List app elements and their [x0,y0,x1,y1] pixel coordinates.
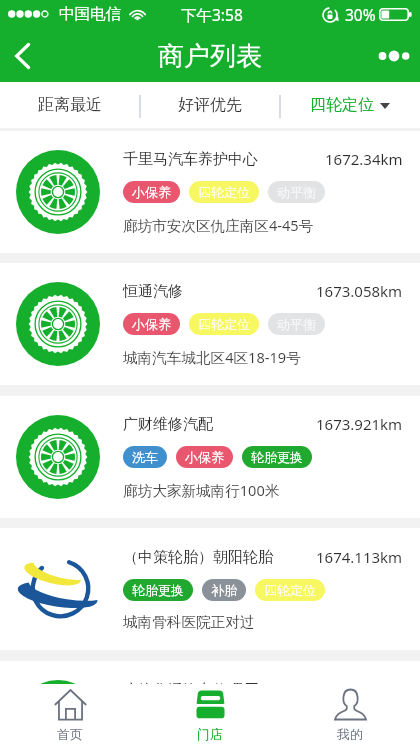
button[interactable]: 门店 [140,684,280,746]
staticText: 广财维修汽配 [123,415,213,434]
staticText: 1672.34km [325,149,403,169]
button[interactable]: Back [0,30,46,82]
staticText: 轮胎更换 [132,582,184,598]
button[interactable]: 千里马汽车养护中心 [0,131,420,253]
staticText: 恒通汽修 [123,282,183,301]
staticText: 洗车 [132,449,158,465]
staticText: 小保养 [132,316,171,332]
staticText: 城南骨科医院正对过 [123,613,255,631]
button[interactable]: （中策轮胎）朝阳轮胎 [0,528,420,650]
staticText: 首页 [57,726,83,742]
staticText: 廊坊大家新城南行100米 [123,480,280,500]
staticText: 四轮定位 [198,316,250,332]
staticText: 小保养 [185,449,224,465]
staticText: 好评优先 [178,95,242,115]
staticText: 四轮定位 [264,582,316,598]
button[interactable]: 好评优先 [140,82,280,128]
staticText: （中策轮胎）朝阳轮胎 [123,548,273,567]
staticText: 商户列表 [158,40,262,73]
staticText: 四轮定位 [198,184,250,200]
staticText: 1674.113km [316,547,403,567]
staticText: 中国电信 [59,4,121,24]
staticText: 四轮定位 [198,715,250,731]
staticText: 廊坊市安次区仇庄南区4-45号 [123,215,314,235]
button[interactable]: 距离最近 [0,82,140,128]
staticText: 动平衡 [277,316,316,332]
staticText: 动平衡 [277,184,316,200]
staticText: 30% [345,4,376,25]
button[interactable]: More options [372,30,420,82]
staticText: 补胎 [211,582,237,598]
staticText: 廊坊华通汽车修理厂 [123,681,258,700]
staticText: 我的 [337,726,363,742]
button[interactable]: 广财维修汽配 [0,396,420,518]
staticText: 城南汽车城北区4区18-19号 [123,347,301,367]
staticText: 轮胎更换 [251,449,303,465]
staticText: 门店 [197,726,223,742]
staticText: 1673.921km [316,414,403,434]
staticText: 距离最近 [38,95,102,115]
button[interactable]: 首页 [0,684,140,746]
staticText: 千里马汽车养护中心 [123,150,258,169]
staticText: 下午3:58 [181,4,243,25]
button[interactable]: 四轮定位 [280,82,420,128]
staticText: 小保养 [132,184,171,200]
button[interactable]: 恒通汽修 [0,263,420,385]
staticText: 1674.5km [334,680,403,700]
button[interactable]: 廊坊华通汽车修理厂 [0,661,420,746]
staticText: 四轮定位 [310,95,374,115]
button[interactable]: 我的 [280,684,420,746]
staticText: 1673.058km [316,281,403,301]
